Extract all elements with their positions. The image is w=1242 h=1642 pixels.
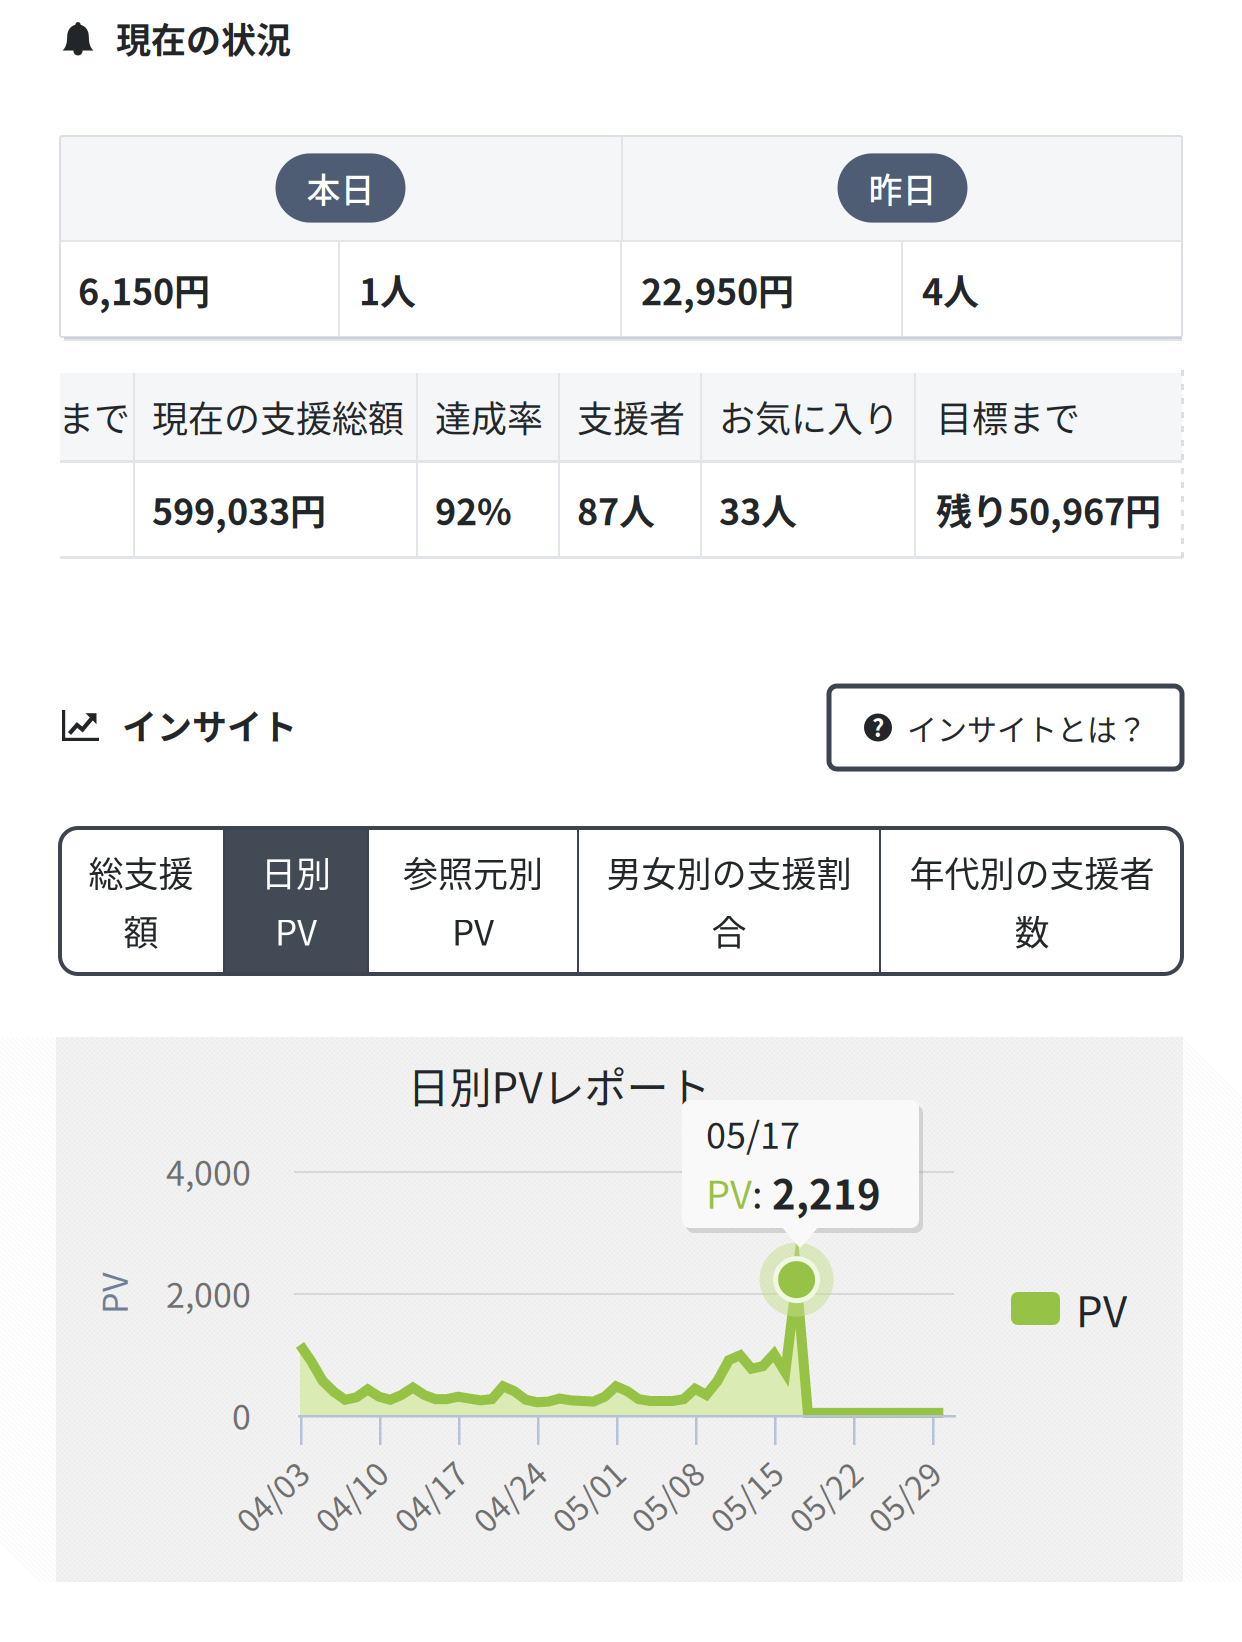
- staticText: PV: [452, 905, 494, 956]
- staticText: 05/17: [706, 1107, 800, 1159]
- staticText: 6,150円: [78, 263, 210, 315]
- staticText: 05/22: [782, 1473, 867, 1519]
- staticText: 支援者: [577, 390, 685, 442]
- staticText: 達成率: [435, 390, 543, 442]
- staticText: PV: [706, 1165, 752, 1220]
- staticText: インサイトとは？: [907, 706, 1147, 749]
- staticText: 残り50,967円: [936, 483, 1161, 535]
- staticText: 87人: [577, 483, 655, 535]
- staticText: インサイト: [122, 700, 297, 750]
- staticText: PV: [1076, 1279, 1127, 1339]
- button[interactable]: 男女別の支援割: [579, 828, 879, 974]
- staticText: ?: [872, 709, 884, 744]
- staticText: 04/17: [387, 1473, 472, 1519]
- button[interactable]: 参照元別: [369, 828, 577, 974]
- staticText: 男女別の支援割: [606, 846, 851, 897]
- staticText: :: [752, 1165, 763, 1220]
- staticText: 92%: [435, 483, 512, 535]
- button[interactable]: 年代別の支援者: [881, 828, 1183, 974]
- button[interactable]: 総支援: [59, 828, 223, 974]
- staticText: 現在の支援総額: [152, 390, 404, 442]
- staticText: 0: [232, 1390, 251, 1440]
- staticText: 4,000: [166, 1146, 251, 1196]
- staticText: 1人: [359, 263, 416, 315]
- button[interactable]: 日別: [225, 828, 367, 974]
- staticText: 日別: [261, 846, 331, 897]
- staticText: PV: [275, 905, 317, 956]
- staticText: 数: [1014, 905, 1049, 956]
- staticText: 日別PVレポート: [407, 1055, 710, 1115]
- staticText: 合: [711, 905, 746, 956]
- staticText: 額: [123, 905, 158, 956]
- staticText: 05/08: [624, 1473, 709, 1519]
- staticText: 599,033円: [152, 483, 326, 535]
- staticText: 4人: [922, 263, 979, 315]
- staticText: 本日: [306, 163, 374, 213]
- staticText: 目標まで: [936, 390, 1080, 442]
- staticText: 22,950円: [641, 263, 794, 315]
- staticText: 2,219: [763, 1163, 881, 1221]
- button[interactable]: ?: [829, 686, 1182, 769]
- staticText: 04/10: [308, 1473, 393, 1519]
- staticText: 04/03: [229, 1473, 314, 1519]
- staticText: 総支援: [88, 846, 193, 897]
- staticText: まで: [58, 390, 130, 442]
- staticText: 参照元別: [403, 846, 543, 897]
- staticText: 年代別の支援者: [909, 846, 1154, 897]
- staticText: 05/29: [861, 1473, 946, 1519]
- staticText: 現在の状況: [116, 13, 291, 63]
- staticText: PV: [92, 1268, 134, 1318]
- staticText: 2,000: [166, 1268, 251, 1318]
- staticText: 33人: [719, 483, 797, 535]
- staticText: 昨日: [868, 163, 936, 213]
- staticText: お気に入り: [719, 390, 899, 442]
- staticText: 05/01: [545, 1473, 630, 1519]
- staticText: 05/15: [703, 1473, 788, 1519]
- staticText: 04/24: [466, 1473, 551, 1519]
